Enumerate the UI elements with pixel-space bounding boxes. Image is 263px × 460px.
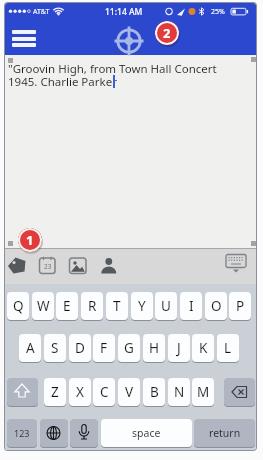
button[interactable] bbox=[5, 55, 256, 248]
button[interactable]: E bbox=[56, 292, 78, 320]
button[interactable]: space bbox=[101, 419, 192, 447]
staticText: 23 bbox=[44, 262, 52, 271]
staticText: I bbox=[189, 297, 194, 315]
staticText: D bbox=[75, 339, 85, 357]
button[interactable]: J bbox=[168, 334, 190, 362]
staticText: V bbox=[125, 383, 134, 401]
staticText: N bbox=[174, 383, 185, 401]
button[interactable] bbox=[7, 378, 38, 406]
button[interactable] bbox=[99, 253, 121, 277]
button[interactable]: 1 bbox=[18, 228, 42, 252]
staticText: Q bbox=[13, 297, 24, 315]
staticText: O bbox=[211, 297, 222, 315]
staticText: B bbox=[150, 383, 159, 401]
staticText: 1945. Charlie Parker bbox=[8, 74, 117, 90]
button[interactable]: H bbox=[143, 334, 165, 362]
staticText: F bbox=[100, 339, 108, 357]
staticText: 11:14 AM bbox=[105, 6, 143, 18]
staticText: M bbox=[197, 383, 210, 401]
staticText: C bbox=[100, 383, 109, 401]
button[interactable]: F bbox=[93, 334, 115, 362]
button[interactable] bbox=[113, 27, 145, 55]
staticText: return bbox=[209, 426, 241, 440]
staticText: W bbox=[37, 297, 50, 315]
button[interactable]: Q bbox=[7, 292, 29, 320]
button[interactable]: X bbox=[69, 378, 91, 406]
staticText: AT&T bbox=[33, 7, 50, 17]
staticText: Z bbox=[51, 383, 59, 401]
staticText: T bbox=[113, 297, 121, 315]
button[interactable]: I bbox=[180, 292, 202, 320]
staticText: L bbox=[224, 339, 232, 357]
button[interactable]: C bbox=[93, 378, 115, 406]
button[interactable] bbox=[6, 253, 28, 277]
button[interactable]: M bbox=[192, 378, 214, 406]
staticText: J bbox=[177, 339, 181, 357]
button[interactable] bbox=[224, 253, 248, 277]
button[interactable]: U bbox=[155, 292, 177, 320]
staticText: P bbox=[236, 297, 245, 315]
button[interactable]: 123 bbox=[7, 419, 37, 447]
button[interactable]: P bbox=[229, 292, 251, 320]
button[interactable]: G bbox=[118, 334, 140, 362]
staticText: 25% bbox=[211, 7, 225, 17]
staticText: K bbox=[199, 339, 208, 357]
button[interactable]: W bbox=[32, 292, 54, 320]
staticText: R bbox=[88, 297, 97, 315]
staticText: 2 bbox=[163, 24, 171, 42]
button[interactable]: return bbox=[194, 419, 255, 447]
staticText: 1 bbox=[26, 231, 34, 249]
staticText: Y bbox=[138, 297, 146, 315]
button[interactable]: K bbox=[192, 334, 214, 362]
staticText: A bbox=[26, 339, 35, 357]
button[interactable]: A bbox=[19, 334, 41, 362]
staticText: G bbox=[124, 339, 134, 357]
staticText: H bbox=[149, 339, 160, 357]
button[interactable] bbox=[67, 253, 89, 277]
staticText: "Groovin High, from Town Hall Concert bbox=[8, 61, 217, 77]
staticText: space bbox=[132, 426, 161, 440]
button[interactable] bbox=[9, 26, 39, 51]
button[interactable]: D bbox=[69, 334, 91, 362]
button[interactable]: O bbox=[205, 292, 227, 320]
button[interactable]: B bbox=[143, 378, 165, 406]
button[interactable] bbox=[224, 378, 255, 406]
staticText: X bbox=[76, 383, 84, 401]
button[interactable] bbox=[40, 419, 68, 447]
staticText: 123 bbox=[14, 427, 30, 439]
button[interactable]: N bbox=[168, 378, 190, 406]
button[interactable]: Y bbox=[131, 292, 153, 320]
staticText: U bbox=[161, 297, 171, 315]
button[interactable]: 2 bbox=[155, 21, 179, 45]
button[interactable]: S bbox=[44, 334, 66, 362]
button[interactable] bbox=[70, 419, 98, 447]
button[interactable]: V bbox=[118, 378, 140, 406]
staticText: E bbox=[63, 297, 71, 315]
button[interactable]: R bbox=[81, 292, 103, 320]
button[interactable] bbox=[37, 253, 59, 277]
button[interactable]: L bbox=[217, 334, 239, 362]
staticText: S bbox=[51, 339, 59, 357]
button[interactable]: T bbox=[106, 292, 128, 320]
button[interactable]: Z bbox=[44, 378, 66, 406]
